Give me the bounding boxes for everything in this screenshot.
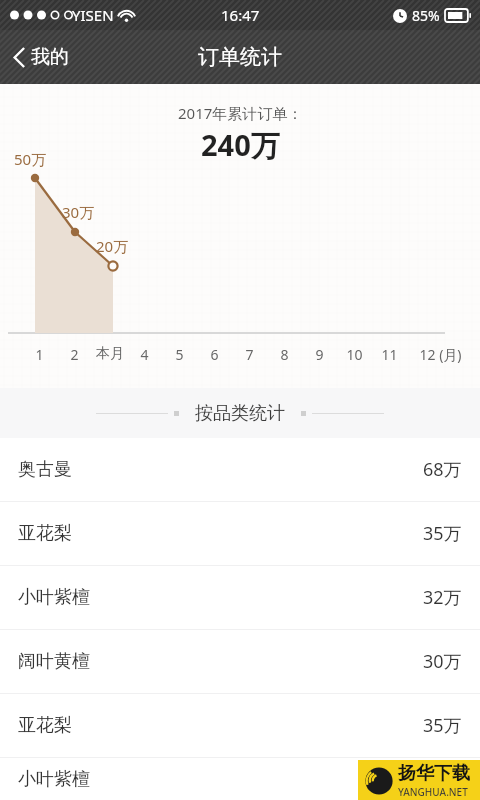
staticText: 30万 — [423, 649, 462, 674]
staticText: 小叶紫檀 — [18, 586, 90, 609]
staticText: 20万 — [96, 236, 129, 256]
staticText: 扬华下载 — [398, 762, 470, 785]
button[interactable]: 我的 — [0, 37, 83, 77]
button[interactable]: 奥古曼 — [0, 438, 480, 501]
staticText: 11 — [381, 345, 398, 364]
staticText: 16:47 — [221, 5, 260, 25]
staticText: 奥古曼 — [18, 458, 72, 481]
staticText: 本月 — [96, 345, 124, 363]
staticText: 32万 — [423, 585, 462, 610]
staticText: 亚花梨 — [18, 714, 72, 737]
staticText: 2 — [70, 345, 79, 364]
button[interactable]: 小叶紫檀 — [0, 758, 480, 800]
staticText: 240万 — [201, 125, 280, 165]
staticText: 30万 — [62, 202, 95, 222]
staticText: 订单统计 — [198, 44, 282, 70]
staticText: 50万 — [14, 149, 47, 169]
staticText: 7 — [245, 345, 254, 364]
staticText: 2017年累计订单： — [178, 103, 303, 123]
staticText: 12 (月) — [419, 345, 462, 364]
staticText: 4 — [140, 345, 149, 364]
staticText: 6 — [210, 345, 219, 364]
staticText: YANGHUA.NET — [398, 785, 468, 799]
staticText: 亚花梨 — [18, 522, 72, 545]
staticText: 35万 — [423, 521, 462, 546]
staticText: 按品类统计 — [195, 402, 285, 425]
staticText: 我的 — [31, 45, 69, 69]
staticText: 85% — [412, 6, 440, 25]
staticText: 阔叶黄檀 — [18, 650, 90, 673]
staticText: 35万 — [423, 713, 462, 738]
staticText: 5 — [175, 345, 184, 364]
staticText: 小叶紫檀 — [18, 768, 90, 791]
button[interactable]: 亚花梨 — [0, 694, 480, 757]
button[interactable]: 亚花梨 — [0, 502, 480, 565]
staticText: 68万 — [423, 457, 462, 482]
button[interactable]: 阔叶黄檀 — [0, 630, 480, 693]
staticText: 10 — [346, 345, 363, 364]
staticText: 9 — [315, 345, 324, 364]
staticText: YISEN — [72, 5, 114, 25]
staticText: 32万 — [423, 767, 462, 792]
button[interactable]: 小叶紫檀 — [0, 566, 480, 629]
staticText: 8 — [280, 345, 289, 364]
staticText: 1 — [35, 345, 44, 364]
